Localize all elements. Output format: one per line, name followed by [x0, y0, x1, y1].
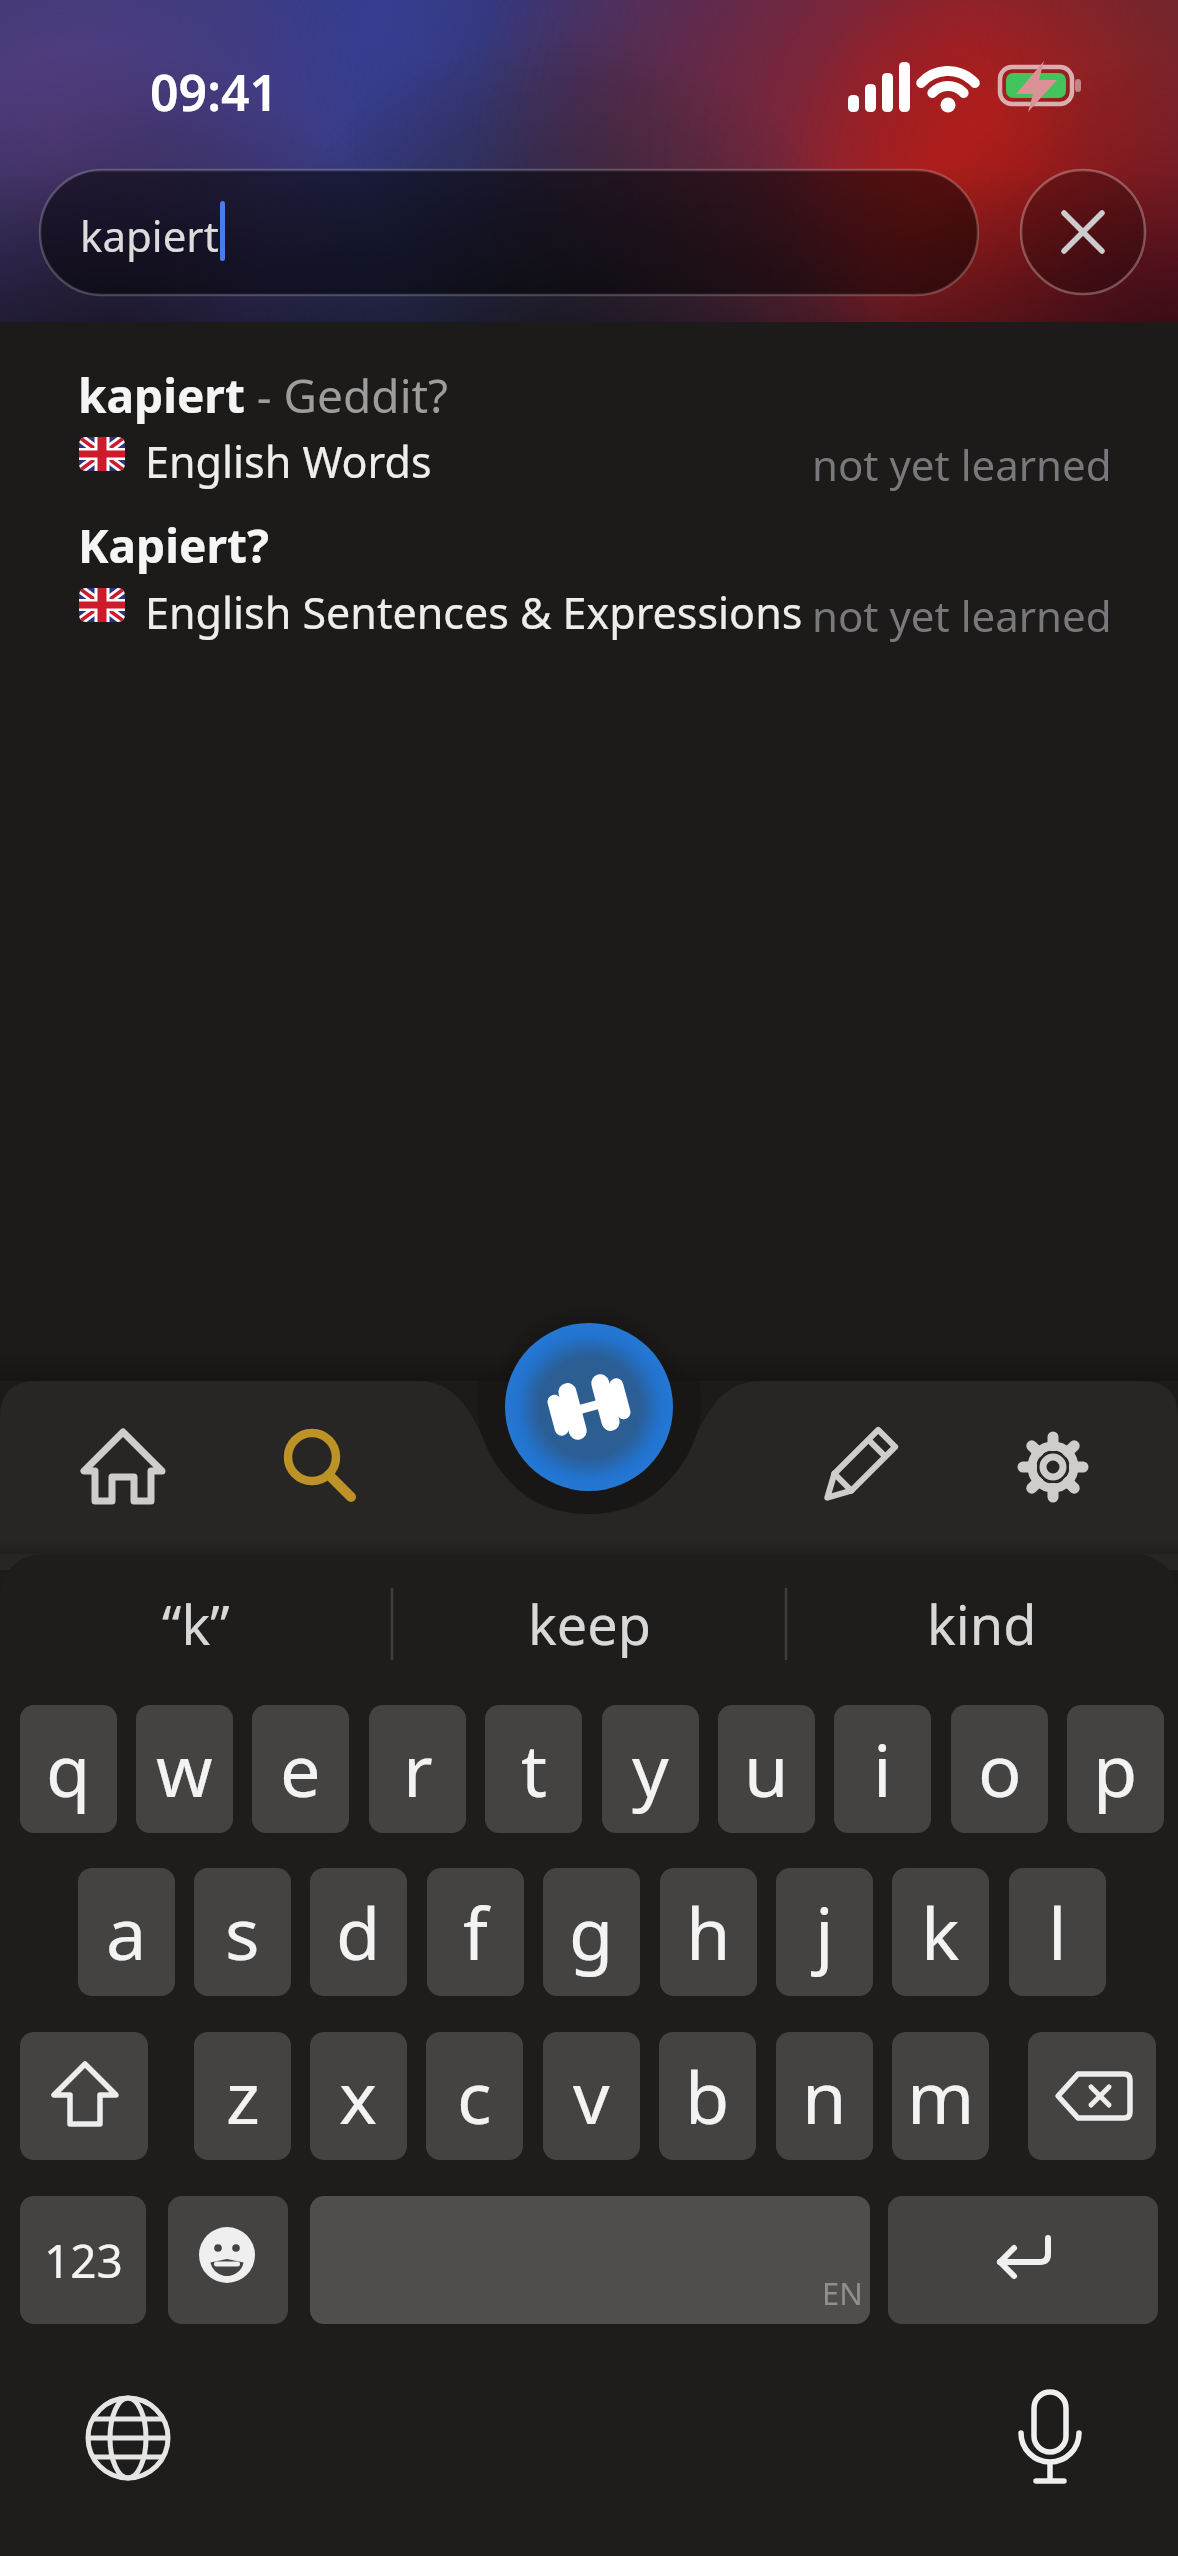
button[interactable]: j [776, 1868, 873, 1996]
button[interactable]: p [1067, 1705, 1164, 1833]
staticText: r [403, 1720, 433, 1818]
button[interactable] [84, 2394, 172, 2482]
button[interactable]: y [602, 1705, 699, 1833]
staticText: 123 [44, 2229, 123, 2292]
staticText: k [921, 1883, 960, 1981]
button[interactable]: 123 [20, 2196, 146, 2324]
staticText: “k” [162, 1587, 230, 1661]
staticText: g [569, 1883, 614, 1981]
staticText: q [46, 1720, 91, 1818]
staticText: e [280, 1720, 321, 1818]
button[interactable]: i [834, 1705, 931, 1833]
staticText: a [106, 1883, 147, 1981]
staticText: keep [528, 1587, 651, 1661]
button[interactable]: kind [786, 1586, 1178, 1662]
staticText: c [457, 2047, 492, 2145]
button[interactable]: n [776, 2032, 873, 2160]
staticText: English Sentences & Expressions [145, 583, 803, 642]
button[interactable]: v [543, 2032, 640, 2160]
staticText: d [336, 1883, 381, 1981]
button[interactable] [40, 170, 978, 295]
button[interactable]: o [951, 1705, 1048, 1833]
button[interactable] [1028, 2032, 1156, 2160]
staticText: h [686, 1883, 731, 1981]
button[interactable]: w [136, 1705, 233, 1833]
staticText: s [225, 1883, 260, 1981]
button[interactable]: k [892, 1868, 989, 1996]
button[interactable]: keep [393, 1586, 785, 1662]
staticText: n [802, 2047, 847, 2145]
staticText: j [815, 1883, 834, 1981]
button[interactable]: q [20, 1705, 117, 1833]
staticText: l [1048, 1883, 1067, 1981]
staticText: v [573, 2047, 610, 2145]
button[interactable]: “k” [0, 1586, 392, 1662]
staticText: kapiert - Geddit? [78, 364, 449, 427]
staticText: f [463, 1883, 488, 1981]
staticText: m [907, 2047, 975, 2145]
staticText: y [632, 1720, 669, 1818]
button[interactable] [40, 350, 1140, 490]
staticText: z [226, 2047, 260, 2145]
button[interactable]: t [485, 1705, 582, 1833]
button[interactable]: x [310, 2032, 407, 2160]
staticText: not yet learned [812, 587, 1112, 644]
button[interactable]: d [310, 1868, 407, 1996]
button[interactable]: a [78, 1868, 175, 1996]
staticText: 09:41 [150, 58, 279, 126]
staticText: EN [822, 2272, 863, 2314]
button[interactable] [794, 1410, 920, 1530]
button[interactable] [40, 500, 1140, 645]
button[interactable] [310, 2196, 870, 2324]
button[interactable] [990, 1410, 1116, 1530]
staticText: not yet learned [812, 436, 1112, 493]
button[interactable]: l [1009, 1868, 1106, 1996]
button[interactable] [1021, 170, 1145, 294]
button[interactable]: z [194, 2032, 291, 2160]
button[interactable] [60, 1410, 186, 1530]
button[interactable]: m [892, 2032, 989, 2160]
button[interactable]: e [252, 1705, 349, 1833]
button[interactable] [20, 2032, 148, 2160]
button[interactable] [505, 1323, 673, 1491]
button[interactable]: r [369, 1705, 466, 1833]
staticText: t [521, 1720, 547, 1818]
button[interactable] [888, 2196, 1158, 2324]
staticText: Kapiert? [78, 514, 269, 577]
button[interactable]: f [427, 1868, 524, 1996]
button[interactable] [260, 1410, 386, 1530]
staticText: English Words [145, 432, 432, 491]
staticText: x [339, 2047, 378, 2145]
button[interactable]: u [718, 1705, 815, 1833]
staticText: kapiert [80, 207, 219, 264]
button[interactable]: h [660, 1868, 757, 1996]
staticText: p [1093, 1720, 1138, 1818]
staticText: u [744, 1720, 789, 1818]
staticText: b [685, 2047, 730, 2145]
button[interactable]: g [543, 1868, 640, 1996]
button[interactable]: s [194, 1868, 291, 1996]
button[interactable] [1004, 2390, 1096, 2485]
staticText: i [873, 1720, 892, 1818]
staticText: w [156, 1720, 213, 1818]
button[interactable]: b [659, 2032, 756, 2160]
button[interactable]: c [426, 2032, 523, 2160]
staticText: o [978, 1720, 1022, 1818]
button[interactable] [168, 2196, 288, 2324]
staticText: kind [927, 1587, 1037, 1661]
